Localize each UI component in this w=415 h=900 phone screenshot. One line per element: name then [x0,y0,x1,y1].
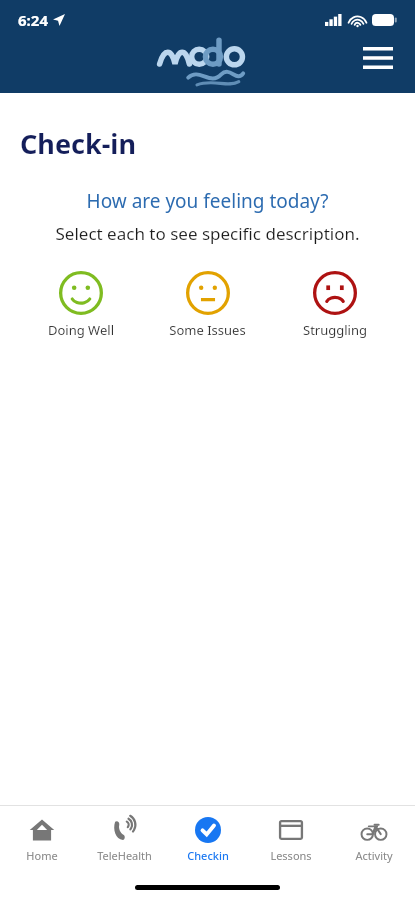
staticText: TeleHealth [97,848,152,863]
staticText: Home [26,848,58,863]
staticText: Checkin [187,848,229,863]
button[interactable]: Doing Well [28,269,133,341]
button[interactable]: Struggling [282,269,387,341]
button[interactable]: Some Issues [155,269,260,341]
button[interactable]: Lessons [249,817,332,863]
button[interactable]: Home [0,817,83,863]
staticText: 6:24 [18,10,48,30]
button[interactable]: Checkin [166,817,249,863]
button[interactable]: Modo Story logo [153,37,263,89]
button[interactable]: TeleHealth [83,817,166,863]
staticText: Lessons [270,848,312,863]
staticText: Doing Well [48,321,114,339]
staticText: Check-in [20,125,136,162]
staticText: Select each to see specific description. [0,222,415,245]
staticText: Activity [355,848,393,863]
button[interactable]: Activity [332,817,415,863]
staticText: Some Issues [169,321,246,339]
staticText: Struggling [303,321,367,339]
staticText: How are you feeling today? [0,188,415,214]
button[interactable]: Menu [355,35,401,81]
